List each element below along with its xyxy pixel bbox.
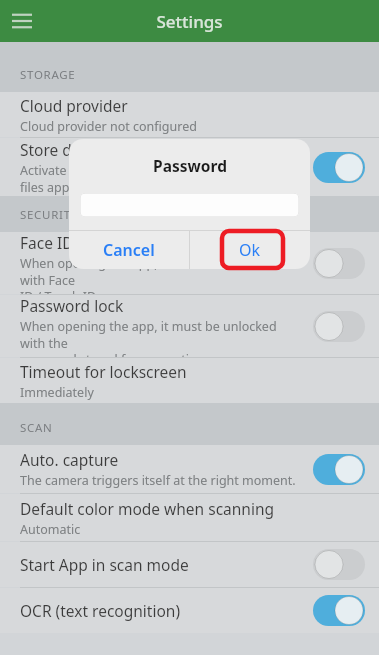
staticText: When opening the app, it must be unlocke…: [20, 255, 305, 294]
button[interactable]: Store documents in the public files: [0, 138, 379, 196]
button[interactable]: Cancel: [69, 231, 189, 269]
button[interactable]: Default color mode when scanning: [0, 494, 379, 541]
button[interactable]: Password lock: [0, 295, 379, 357]
button[interactable]: Auto. capture: [0, 445, 379, 493]
staticText: Cloud provider: [20, 95, 128, 116]
button[interactable]: Start App in scan mode: [0, 542, 379, 587]
staticText: Automatic: [20, 521, 81, 538]
button[interactable]: OCR (text recognition): [0, 588, 379, 633]
staticText: Cloud provider not configured: [20, 118, 197, 135]
button[interactable]: Timeout for lockscreen: [0, 358, 379, 403]
staticText: Ok: [239, 239, 261, 261]
button[interactable]: Toggle off: [313, 311, 365, 342]
staticText: STORAGE: [20, 67, 76, 83]
staticText: When opening the app, it must be unlocke…: [20, 318, 305, 357]
staticText: Face ID / Touch ID Lock: [20, 232, 189, 253]
button[interactable]: Password entry field: [80, 193, 299, 217]
staticText: OCR (text recognition): [20, 600, 181, 621]
button[interactable]: Open navigation menu: [0, 0, 44, 42]
staticText: Timeout for lockscreen: [20, 361, 187, 382]
button[interactable]: Toggle on: [313, 152, 365, 183]
staticText: Activate this option to access scans in …: [20, 162, 263, 195]
staticText: The camera triggers itself at the right …: [20, 472, 296, 489]
staticText: Store documents in the public files: [20, 139, 272, 160]
staticText: Immediately: [20, 384, 94, 401]
button[interactable]: Toggle off: [313, 549, 365, 580]
staticText: Start App in scan mode: [20, 554, 189, 575]
button[interactable]: Face ID / Touch ID Lock: [0, 232, 379, 294]
button[interactable]: Toggle on: [313, 595, 365, 626]
button[interactable]: Toggle on: [313, 454, 365, 485]
button[interactable]: Toggle off: [313, 248, 365, 279]
staticText: Cancel: [103, 239, 155, 261]
button[interactable]: Cloud provider: [0, 92, 379, 137]
button[interactable]: Ok: [190, 231, 310, 269]
staticText: Settings: [156, 10, 223, 33]
staticText: Password lock: [20, 295, 124, 316]
staticText: SCAN: [20, 420, 53, 436]
staticText: Default color mode when scanning: [20, 498, 275, 519]
staticText: Auto. capture: [20, 449, 119, 470]
staticText: SECURITY: [20, 207, 78, 223]
staticText: Password: [153, 155, 227, 176]
